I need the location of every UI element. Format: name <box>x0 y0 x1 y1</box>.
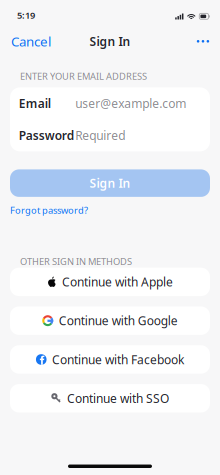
staticText: Continue with Facebook <box>52 351 184 367</box>
button[interactable]: Continue with Apple <box>10 268 210 296</box>
button[interactable]: More options <box>192 31 214 51</box>
staticText: Continue with Google <box>59 313 178 329</box>
staticText: Continue with Apple <box>62 274 173 290</box>
staticText: Email <box>19 95 51 111</box>
button[interactable]: Continue with Facebook <box>10 345 210 374</box>
button[interactable]: Continue with SSO <box>10 384 210 412</box>
staticText: Cancel <box>11 32 51 50</box>
button[interactable]: Continue with Google <box>10 306 210 335</box>
button[interactable]: Cancel <box>6 27 56 55</box>
staticText: 5:19 <box>17 9 35 21</box>
button[interactable]: Sign In <box>10 169 210 197</box>
staticText: ENTER YOUR EMAIL ADDRESS <box>20 70 147 82</box>
staticText: Sign In <box>89 33 130 49</box>
staticText: Continue with SSO <box>67 390 169 406</box>
staticText: Sign In <box>89 175 130 191</box>
button[interactable]: Forgot password? <box>10 204 88 216</box>
staticText: OTHER SIGN IN METHODS <box>20 255 132 268</box>
staticText: Required <box>75 127 125 143</box>
staticText: Forgot password? <box>10 204 88 216</box>
staticText: Password <box>19 127 75 143</box>
staticText: user@example.com <box>75 95 186 111</box>
